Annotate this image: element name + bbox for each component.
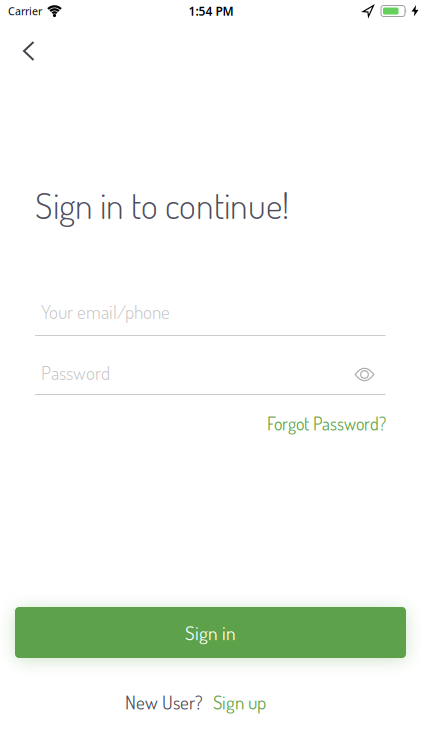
staticText: New User? [125,690,203,714]
button[interactable]: Sign in [15,607,406,658]
staticText: Carrier [8,4,42,18]
staticText: Your email/phone [41,299,170,324]
staticText: Password [41,360,110,385]
button[interactable]: Sign up [203,690,266,714]
staticText: Forgot Password? [267,412,386,435]
button[interactable]: Forgot Password? [267,412,386,435]
staticText: Sign in to continue! [35,182,289,227]
staticText: Sign in [185,620,236,645]
staticText: Sign up [213,690,266,714]
button[interactable]: Show password [348,362,380,387]
staticText: 1:54 PM [188,3,233,19]
button[interactable]: Back [13,33,45,69]
